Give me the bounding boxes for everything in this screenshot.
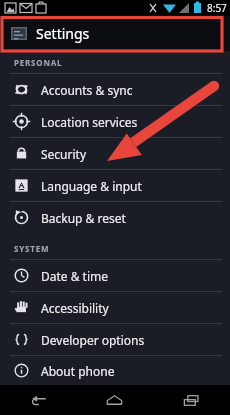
staticText: Location services <box>41 114 138 130</box>
button[interactable]: Back <box>0 385 76 415</box>
staticText: Date & time <box>41 268 109 284</box>
staticText: Accessibility <box>41 300 109 316</box>
button[interactable]: Home <box>76 385 153 415</box>
button[interactable]: Accounts & sync <box>0 74 230 105</box>
button[interactable]: Language & input <box>0 170 230 201</box>
staticText: 8:57 <box>207 1 227 15</box>
staticText: PERSONAL <box>14 57 63 68</box>
staticText: Developer options <box>41 332 145 348</box>
staticText: SYSTEM <box>14 243 50 254</box>
staticText: Settings <box>36 24 90 43</box>
button[interactable]: Accessibility <box>0 292 230 323</box>
button[interactable]: Date & time <box>0 260 230 291</box>
button[interactable]: About phone <box>0 356 230 385</box>
staticText: Language & input <box>41 178 142 194</box>
staticText: About phone <box>41 363 115 379</box>
button[interactable]: Settings <box>0 16 230 51</box>
button[interactable]: Security <box>0 138 230 169</box>
button[interactable]: Recent apps <box>153 385 230 415</box>
button[interactable]: Backup & reset <box>0 202 230 233</box>
button[interactable]: Location services <box>0 106 230 137</box>
staticText: Security <box>41 146 87 162</box>
staticText: Backup & reset <box>41 210 126 226</box>
button[interactable]: Developer options <box>0 324 230 355</box>
staticText: Accounts & sync <box>41 82 133 98</box>
